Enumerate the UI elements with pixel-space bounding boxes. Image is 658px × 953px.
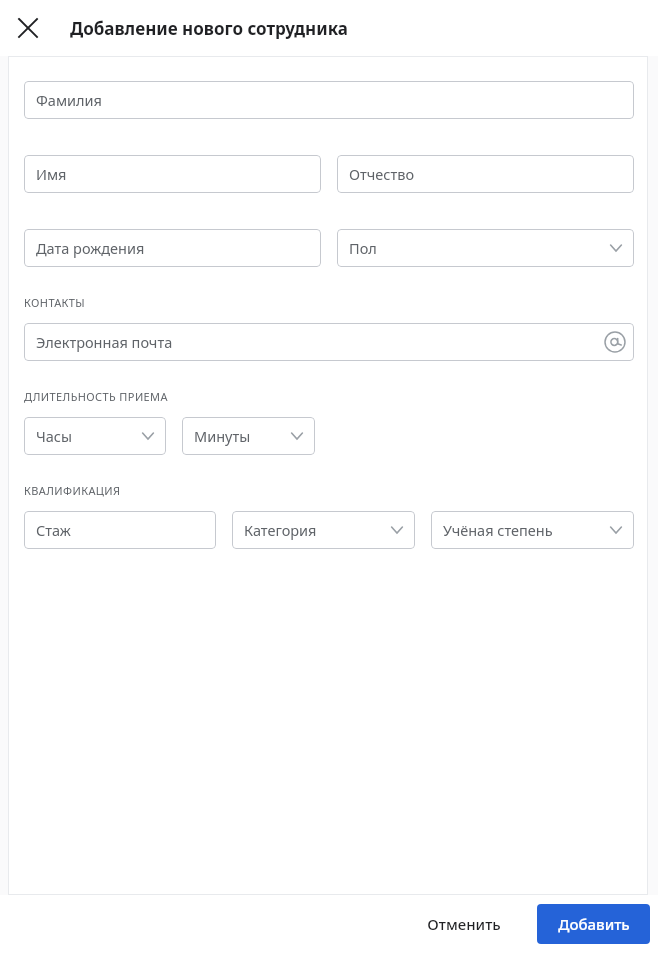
button[interactable]: Пол [337, 229, 634, 267]
staticText: Фамилия [36, 90, 626, 110]
staticText: Минуты [194, 426, 283, 446]
button[interactable]: Категория [232, 511, 415, 549]
button[interactable]: Отменить [409, 904, 519, 944]
button[interactable]: Добавить [537, 904, 650, 944]
staticText: Дата рождения [36, 238, 313, 258]
staticText: КВАЛИФИКАЦИЯ [24, 483, 121, 498]
staticText: Часы [36, 426, 134, 446]
staticText: Пол [349, 238, 602, 258]
staticText: Электронная почта [36, 332, 600, 352]
button[interactable]: Фамилия [24, 81, 634, 119]
staticText: Добавление нового сотрудника [70, 17, 348, 40]
staticText: Отчество [349, 164, 626, 184]
staticText: Категория [244, 520, 383, 540]
button[interactable]: Имя [24, 155, 321, 193]
staticText: Учёная степень [443, 520, 602, 540]
button[interactable]: Закрыть [10, 10, 46, 46]
staticText: Добавить [558, 914, 630, 934]
button[interactable]: Стаж [24, 511, 216, 549]
staticText: Имя [36, 164, 313, 184]
staticText: ДЛИТЕЛЬНОСТЬ ПРИЕМА [24, 389, 168, 404]
staticText: КОНТАКТЫ [24, 295, 86, 310]
button[interactable]: Электронная почта [24, 323, 634, 361]
button[interactable]: Учёная степень [431, 511, 634, 549]
staticText: Стаж [36, 520, 208, 540]
button[interactable]: Отчество [337, 155, 634, 193]
button[interactable]: Часы [24, 417, 166, 455]
button[interactable]: Минуты [182, 417, 315, 455]
button[interactable]: Дата рождения [24, 229, 321, 267]
staticText: Отменить [427, 914, 501, 934]
